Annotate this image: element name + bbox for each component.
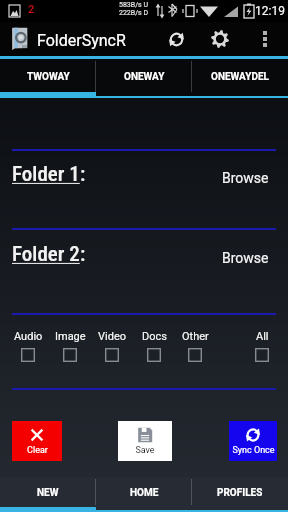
button[interactable]: Folder 1 xyxy=(12,162,86,187)
staticText: Save xyxy=(135,445,155,456)
button[interactable]: ONEWAYDEL xyxy=(192,59,288,98)
staticText: Sync Once xyxy=(232,445,275,456)
button[interactable]: Settings xyxy=(203,22,237,56)
button[interactable]: ONEWAY xyxy=(96,59,192,98)
staticText: PROFILES xyxy=(217,487,263,499)
staticText: Image xyxy=(55,330,86,343)
staticText: Browse xyxy=(222,250,269,266)
button[interactable]: Sync xyxy=(158,22,194,56)
staticText: : xyxy=(80,162,86,187)
staticText: 2 xyxy=(28,3,35,16)
staticText: Folder 1 xyxy=(12,162,80,187)
staticText: Audio xyxy=(14,330,43,343)
button[interactable]: Video xyxy=(88,330,136,362)
button[interactable]: Folder 2 xyxy=(12,242,86,267)
staticText: Other xyxy=(182,330,209,343)
button[interactable]: All xyxy=(238,330,286,362)
staticText: All xyxy=(256,330,269,343)
staticText: : xyxy=(80,242,86,267)
button[interactable]: App icon xyxy=(11,27,30,50)
button[interactable]: Clear xyxy=(12,421,62,461)
button[interactable]: TWOWAY xyxy=(0,59,96,98)
button[interactable]: Audio xyxy=(4,330,52,362)
button[interactable]: Docs xyxy=(130,330,178,362)
button[interactable]: Sync Once xyxy=(229,421,277,461)
staticText: NEW xyxy=(37,487,59,499)
staticText: Docs xyxy=(142,330,167,343)
button[interactable]: PROFILES xyxy=(192,477,288,512)
staticText: Video xyxy=(98,330,126,343)
button[interactable]: Save xyxy=(118,421,172,461)
staticText: ONEWAY xyxy=(124,71,165,83)
staticText: Clear xyxy=(27,445,48,456)
staticText: FolderSyncR xyxy=(37,31,126,50)
staticText: HOME xyxy=(130,487,159,499)
button[interactable]: Other xyxy=(171,330,219,362)
staticText: 222B/s D xyxy=(119,9,148,17)
button[interactable]: Browse xyxy=(222,170,269,186)
staticText: Folder 2 xyxy=(12,242,80,267)
staticText: ONEWAYDEL xyxy=(211,71,269,83)
staticText: Browse xyxy=(222,170,269,186)
button[interactable]: Image xyxy=(46,330,94,362)
staticText: TWOWAY xyxy=(27,71,70,83)
staticText: 12:19 xyxy=(255,4,285,18)
button[interactable]: Browse xyxy=(222,250,269,266)
button[interactable]: NEW xyxy=(0,477,96,512)
staticText: 583B/s U xyxy=(119,1,148,9)
button[interactable]: More options xyxy=(249,22,281,56)
button[interactable]: HOME xyxy=(96,477,192,512)
